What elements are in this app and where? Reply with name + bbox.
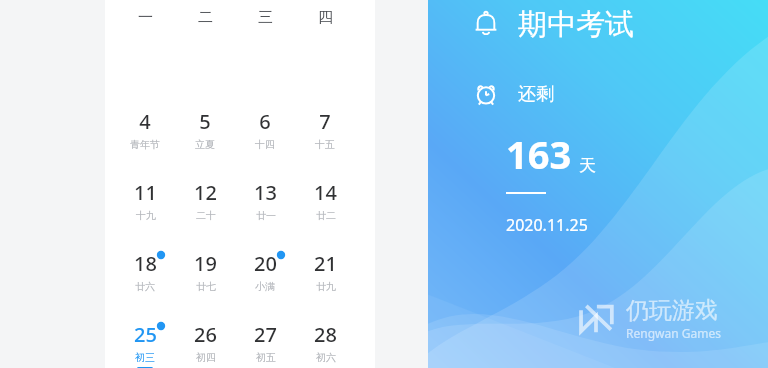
other: Reminder (466, 4, 506, 44)
staticText: 四 (318, 8, 333, 27)
button[interactable]: 11 (115, 179, 175, 237)
staticText: 21 (314, 250, 337, 277)
staticText: 163 (506, 128, 572, 180)
staticText: 三 (258, 8, 273, 27)
staticText: 初五 (256, 351, 276, 364)
button[interactable]: Reminder (466, 4, 634, 44)
staticText: 初三 (135, 351, 155, 364)
staticText: 6 (259, 108, 271, 135)
staticText: 25 (134, 321, 157, 348)
staticText: 28 (314, 321, 337, 348)
button[interactable]: Remaining time (466, 74, 554, 114)
staticText: 14 (314, 179, 337, 206)
staticText: 19 (194, 250, 217, 277)
button[interactable]: 25 (115, 321, 175, 368)
button[interactable]: 20 (235, 250, 295, 308)
staticText: 初六 (316, 351, 336, 364)
button[interactable]: 28 (295, 321, 355, 368)
staticText: 还剩 (518, 83, 554, 106)
button[interactable]: 26 (175, 321, 235, 368)
staticText: 廿九 (316, 280, 336, 293)
staticText: 5 (199, 108, 211, 135)
staticText: 初四 (196, 351, 216, 364)
button[interactable]: 4 (115, 108, 175, 166)
staticText: 26 (194, 321, 217, 348)
staticText: 廿六 (135, 280, 155, 293)
staticText: 4 (139, 108, 151, 135)
button[interactable]: 19 (175, 250, 235, 308)
staticText: 一 (138, 8, 153, 27)
staticText: 期中考试 (518, 6, 634, 43)
staticText: 仍玩游戏 (626, 296, 718, 325)
button[interactable]: 7 (295, 108, 355, 166)
staticText: 立夏 (195, 138, 215, 151)
staticText: 廿一 (256, 209, 276, 222)
staticText: 2020.11.25 (506, 214, 588, 236)
staticText: 二 (198, 8, 213, 27)
staticText: 天 (579, 155, 596, 176)
staticText: 小满 (255, 280, 275, 293)
staticText: 廿七 (196, 280, 216, 293)
button[interactable]: 13 (235, 179, 295, 237)
button[interactable]: 12 (175, 179, 235, 237)
staticText: 20 (254, 250, 277, 277)
staticText: 27 (254, 321, 277, 348)
button[interactable]: 5 (175, 108, 235, 166)
staticText: 二十 (196, 209, 216, 222)
staticText: 十四 (255, 138, 275, 151)
staticText: 11 (134, 179, 157, 206)
staticText: Rengwan Games (626, 325, 721, 341)
staticText: 13 (254, 179, 277, 206)
staticText: 十九 (136, 209, 156, 222)
staticText: 青年节 (130, 138, 160, 151)
staticText: 十五 (315, 138, 335, 151)
button[interactable]: 27 (235, 321, 295, 368)
staticText: 廿二 (316, 209, 336, 222)
staticText: 7 (319, 108, 331, 135)
other: Remaining time (466, 74, 506, 114)
button[interactable]: 14 (295, 179, 355, 237)
staticText: 18 (134, 250, 157, 277)
staticText: 12 (194, 179, 217, 206)
button[interactable]: 6 (235, 108, 295, 166)
button[interactable]: 21 (295, 250, 355, 308)
button[interactable]: 18 (115, 250, 175, 308)
